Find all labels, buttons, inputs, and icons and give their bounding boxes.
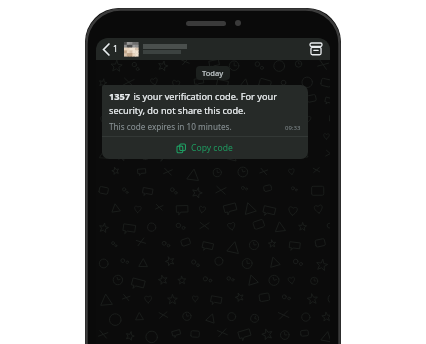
staticText: This code expires in 10 minutes.	[109, 121, 232, 132]
staticText: Today	[202, 68, 224, 78]
staticText: Copy code	[191, 142, 233, 154]
staticText: is your verification code. For your	[131, 90, 277, 103]
staticText: 1357	[109, 90, 131, 103]
staticText: 09:33	[285, 124, 301, 132]
button[interactable]: Copy code	[102, 137, 308, 159]
button[interactable]: Back	[101, 41, 120, 57]
staticText: 1	[113, 43, 118, 55]
button[interactable]: Archive	[307, 40, 325, 58]
staticText: security, do not share this code.	[109, 104, 246, 117]
